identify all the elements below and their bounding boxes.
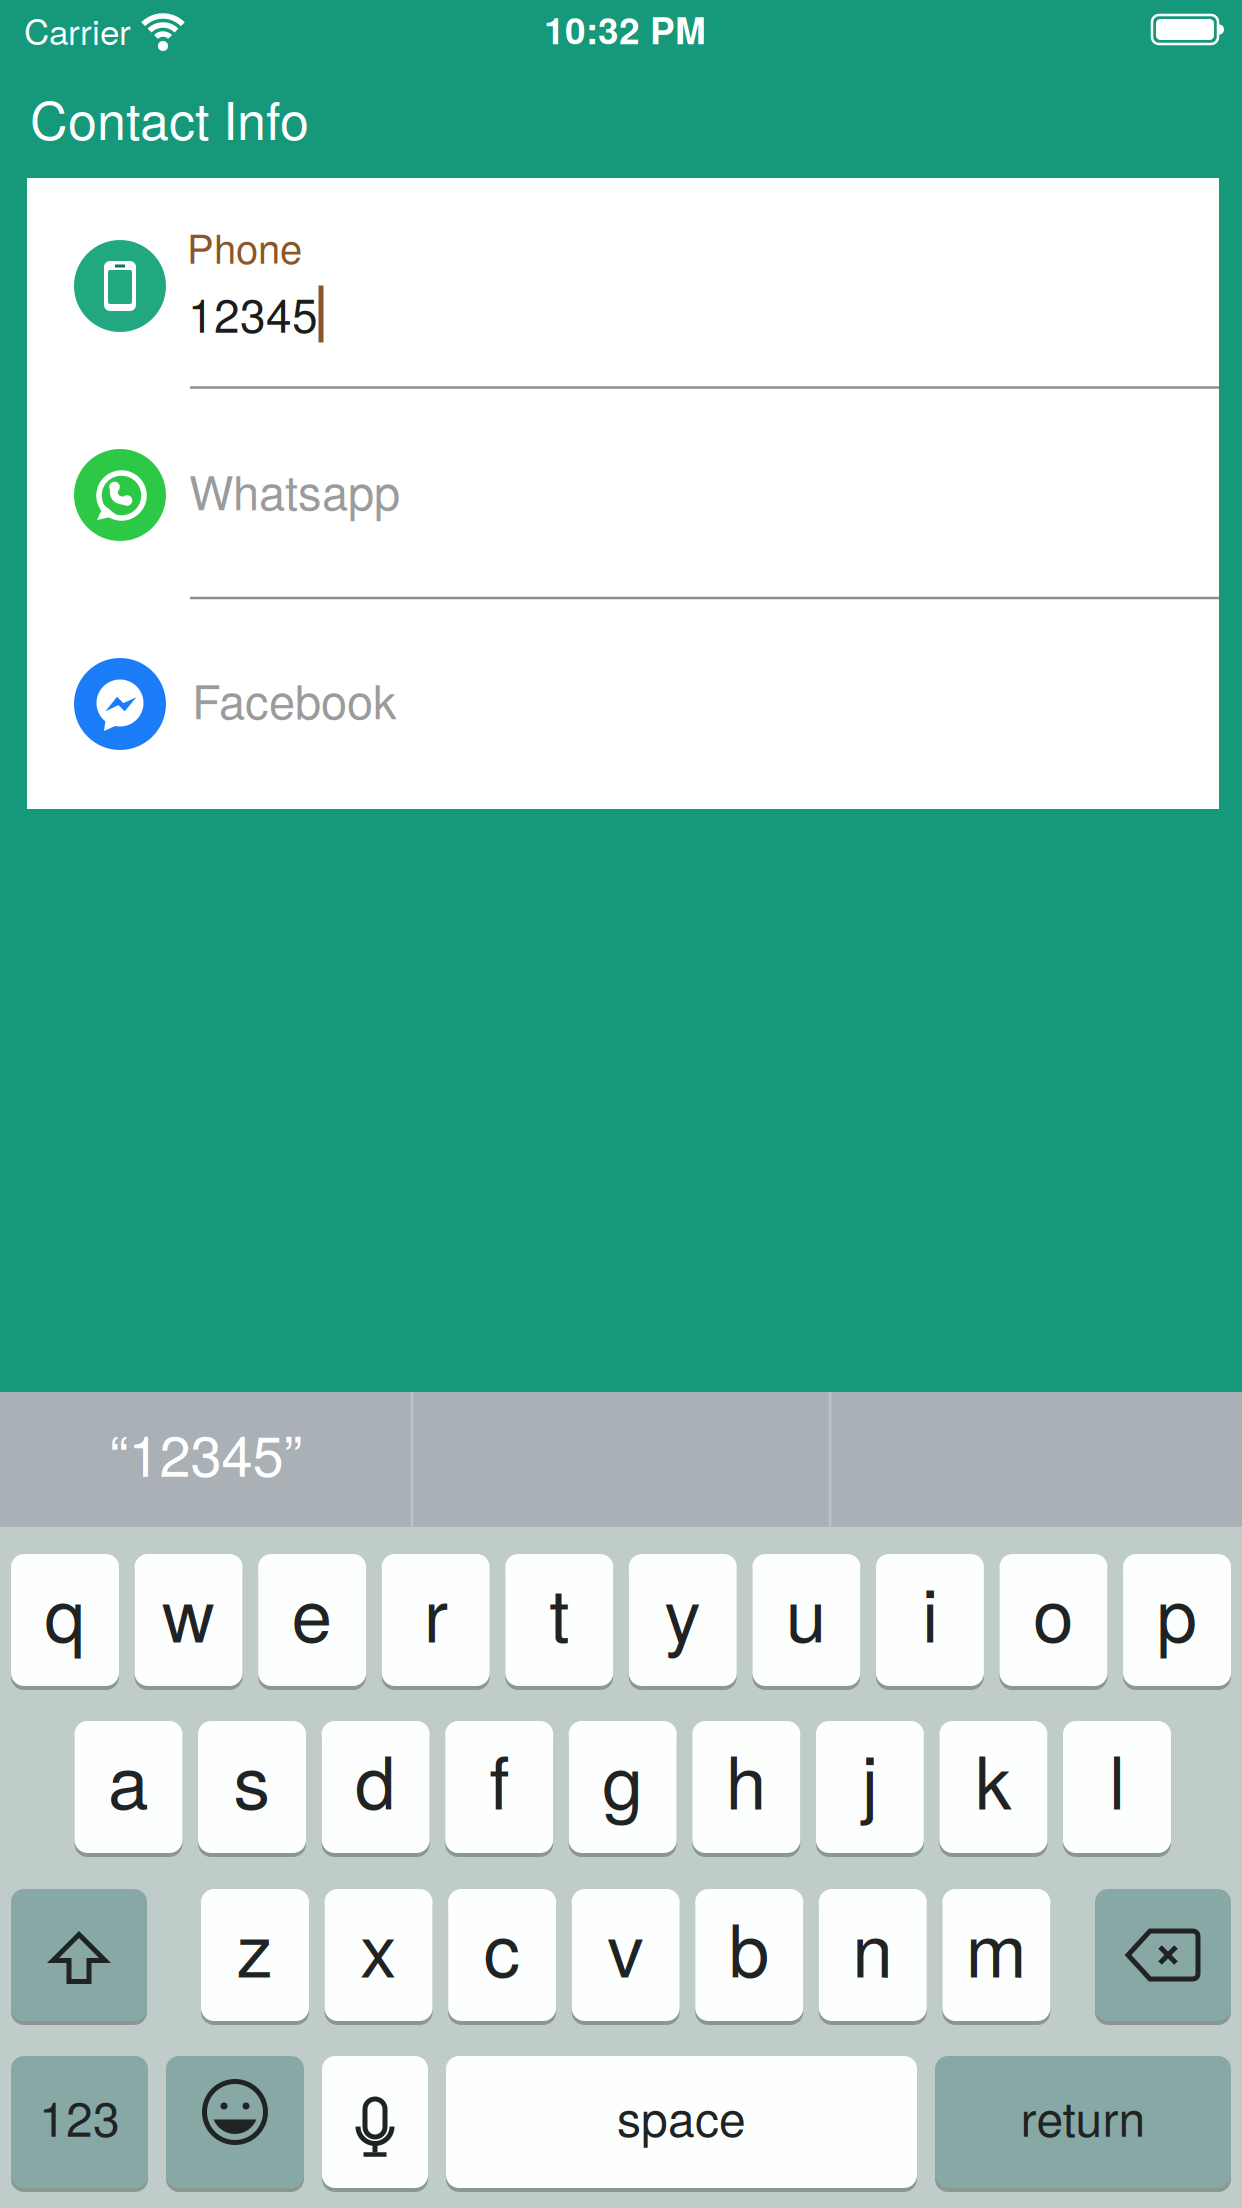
- button[interactable]: t: [505, 1554, 613, 1686]
- button[interactable]: c: [448, 1889, 556, 2021]
- staticText: h: [726, 1726, 767, 1830]
- staticText: b: [729, 1894, 770, 1998]
- button[interactable]: 123: [11, 2056, 148, 2188]
- button[interactable]: f: [445, 1721, 553, 1853]
- staticText: Whatsapp: [189, 456, 400, 524]
- button[interactable]: l: [1063, 1721, 1171, 1853]
- button[interactable]: k: [939, 1721, 1047, 1853]
- button[interactable]: space: [446, 2056, 917, 2188]
- button[interactable]: v: [572, 1889, 680, 2021]
- staticText: i: [922, 1559, 938, 1663]
- button[interactable]: g: [569, 1721, 677, 1853]
- staticText: space: [617, 2082, 746, 2150]
- staticText: Contact Info: [30, 80, 309, 155]
- staticText: y: [664, 1559, 701, 1663]
- button[interactable]: d: [322, 1721, 430, 1853]
- staticText: n: [852, 1894, 893, 1998]
- staticText: m: [966, 1894, 1027, 1998]
- staticText: o: [1033, 1559, 1074, 1663]
- button[interactable]: z: [201, 1889, 309, 2021]
- button[interactable]: a: [74, 1721, 182, 1853]
- staticText: 12345: [188, 280, 318, 346]
- staticText: q: [44, 1559, 85, 1663]
- button[interactable]: p: [1123, 1554, 1231, 1686]
- button[interactable]: b: [695, 1889, 803, 2021]
- staticText: e: [292, 1559, 333, 1663]
- staticText: k: [975, 1726, 1012, 1830]
- staticText: p: [1156, 1559, 1197, 1663]
- staticText: g: [602, 1726, 643, 1830]
- button[interactable]: m: [942, 1889, 1050, 2021]
- button[interactable]: e: [258, 1554, 366, 1686]
- button[interactable]: Dictation: [322, 2056, 428, 2188]
- staticText: f: [489, 1726, 509, 1830]
- staticText: d: [355, 1726, 396, 1830]
- button[interactable]: n: [819, 1889, 927, 2021]
- button[interactable]: s: [198, 1721, 306, 1853]
- button[interactable]: h: [692, 1721, 800, 1853]
- button[interactable]: w: [135, 1554, 243, 1686]
- button[interactable]: Emoji: [166, 2056, 304, 2188]
- staticText: u: [786, 1559, 827, 1663]
- staticText: a: [108, 1726, 149, 1830]
- staticText: t: [549, 1559, 569, 1663]
- staticText: 10:32 PM: [544, 2, 706, 55]
- button[interactable]: y: [629, 1554, 737, 1686]
- button[interactable]: return: [935, 2056, 1231, 2188]
- button[interactable]: Facebook: [27, 599, 1219, 809]
- staticText: c: [484, 1894, 521, 1998]
- button[interactable]: “12345”: [0, 1385, 412, 1520]
- staticText: j: [862, 1726, 878, 1830]
- staticText: r: [424, 1559, 448, 1663]
- button[interactable]: o: [999, 1554, 1107, 1686]
- staticText: z: [236, 1894, 273, 1998]
- staticText: Phone: [187, 218, 302, 275]
- staticText: w: [162, 1559, 215, 1663]
- button[interactable]: Delete: [1095, 1889, 1231, 2021]
- staticText: Facebook: [192, 665, 397, 733]
- button[interactable]: Phone: [27, 178, 1219, 386]
- button[interactable]: q: [11, 1554, 119, 1686]
- staticText: s: [234, 1726, 271, 1830]
- button[interactable]: u: [752, 1554, 860, 1686]
- staticText: return: [1020, 2082, 1145, 2150]
- staticText: 123: [39, 2082, 120, 2150]
- button[interactable]: i: [876, 1554, 984, 1686]
- staticText: “12345”: [109, 1412, 302, 1493]
- button[interactable]: j: [816, 1721, 924, 1853]
- button[interactable]: x: [325, 1889, 433, 2021]
- button[interactable]: Whatsapp: [27, 389, 1219, 598]
- button[interactable]: r: [382, 1554, 490, 1686]
- button[interactable]: Shift: [11, 1889, 147, 2021]
- staticText: Carrier: [24, 5, 131, 55]
- staticText: v: [607, 1894, 644, 1998]
- staticText: l: [1109, 1726, 1125, 1830]
- staticText: x: [360, 1894, 397, 1998]
